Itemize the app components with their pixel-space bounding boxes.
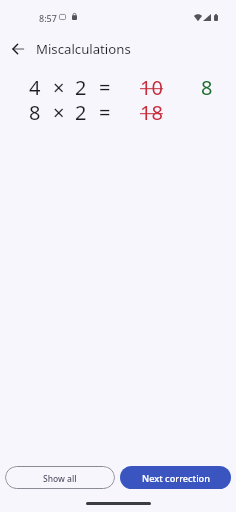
staticText: Miscalculations	[36, 40, 131, 58]
staticText: 10	[140, 74, 163, 101]
staticText: =	[99, 99, 111, 126]
staticText: ×	[53, 99, 65, 126]
staticText: Next correction	[142, 472, 210, 485]
staticText: 8	[29, 99, 41, 126]
staticText: 18	[140, 99, 163, 126]
button[interactable]: Next correction	[120, 466, 231, 489]
staticText: 8:57	[39, 12, 57, 24]
staticText: 2	[75, 99, 87, 126]
staticText: Show all	[43, 473, 77, 485]
button[interactable]: Back	[5, 36, 31, 62]
staticText: =	[99, 74, 111, 101]
button[interactable]: Show all	[5, 466, 115, 489]
staticText: 2	[75, 74, 87, 101]
staticText: 8	[201, 74, 213, 101]
staticText: 4	[29, 74, 41, 101]
staticText: ×	[53, 74, 65, 101]
